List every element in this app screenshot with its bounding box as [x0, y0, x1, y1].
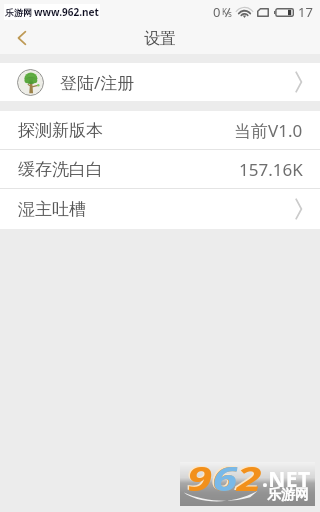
staticText: 探测新版本 [18, 120, 103, 141]
button[interactable]: 登陆/注册 [0, 63, 320, 101]
staticText: 0 [213, 3, 221, 21]
staticText: s [228, 8, 232, 19]
button[interactable]: 探测新版本 [0, 111, 320, 149]
staticText: 962 [187, 455, 262, 499]
staticText: www.962.net [34, 5, 99, 19]
button[interactable]: Back [0, 24, 44, 54]
staticText: .NET [262, 465, 311, 494]
staticText: K [222, 6, 227, 17]
staticText: 湿主吐槽 [18, 199, 86, 220]
staticText: 登陆/注册 [60, 71, 135, 94]
button[interactable]: 湿主吐槽 [0, 189, 320, 229]
staticText: 当前V1.0 [234, 119, 303, 142]
staticText: 6 [212, 455, 237, 499]
staticText: 157.16K [239, 158, 303, 181]
staticText: 9 [187, 455, 212, 499]
staticText: 设置 [144, 29, 176, 49]
staticText: 17 [298, 3, 313, 21]
staticText: 乐游网 [5, 7, 32, 18]
staticText: 962 [186, 454, 261, 498]
staticText: 缓存洗白白 [18, 159, 103, 180]
staticText: 乐游网 [267, 486, 309, 504]
button[interactable]: 缓存洗白白 [0, 150, 320, 188]
